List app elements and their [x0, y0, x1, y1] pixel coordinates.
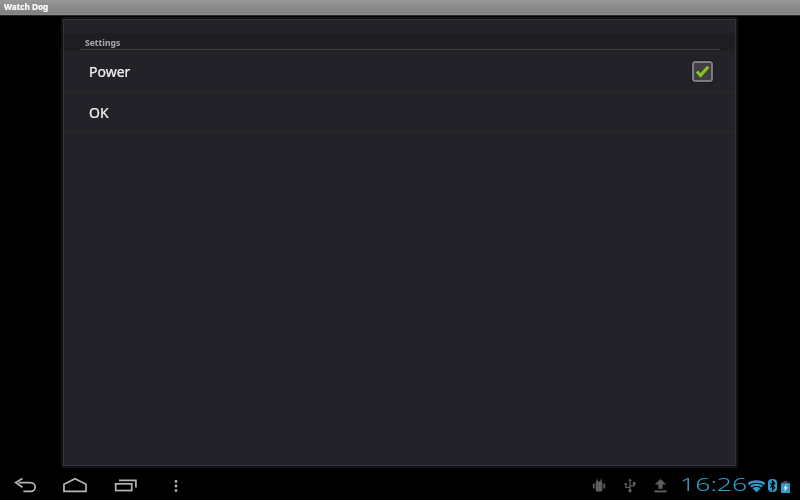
other: Bluetooth on	[768, 479, 777, 492]
button[interactable]: Recent apps	[115, 479, 137, 491]
other: Uploading	[654, 478, 667, 493]
staticText: Watch Dog	[4, 1, 49, 12]
staticText: OK	[89, 103, 109, 122]
other: USB connected	[623, 478, 637, 493]
button[interactable]: More options	[173, 480, 179, 492]
other: Power checkbox	[691, 60, 714, 83]
staticText: Power	[89, 62, 131, 81]
other: Battery charging	[781, 481, 790, 493]
button[interactable]: Home	[63, 478, 87, 492]
staticText: Settings	[85, 37, 121, 49]
button[interactable]: Power	[63, 51, 736, 92]
button[interactable]: OK	[63, 92, 736, 133]
staticText: 16:26	[680, 472, 748, 496]
button[interactable]: Back	[15, 478, 37, 492]
other: Wi-Fi signal full	[748, 480, 765, 492]
other: USB debugging connected	[592, 477, 606, 493]
